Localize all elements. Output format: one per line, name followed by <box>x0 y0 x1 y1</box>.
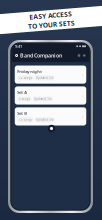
button[interactable]: Profile <box>15 54 18 57</box>
staticText: › <box>82 71 84 78</box>
staticText: EASY ACCESS <box>29 11 72 20</box>
staticText: Updated 2d <box>36 76 53 80</box>
staticText: Set B <box>17 110 27 116</box>
staticText: Updated 3w <box>36 118 53 121</box>
button[interactable]: Set B <box>15 107 86 125</box>
button[interactable]: Friday night <box>15 65 86 84</box>
button[interactable]: Settings <box>82 54 86 57</box>
staticText: 9 songs <box>19 97 30 101</box>
staticText: 14 songs <box>19 76 32 80</box>
button[interactable]: Set A <box>15 86 86 105</box>
staticText: › <box>82 113 84 120</box>
button[interactable]: Search <box>77 54 81 57</box>
staticText: Band Companion <box>20 52 62 59</box>
staticText: › <box>82 92 84 99</box>
staticText: Friday night <box>17 69 42 74</box>
staticText: TO YOUR SETS <box>27 20 74 29</box>
button[interactable]: Add set <box>48 125 55 132</box>
staticText: 9:41 <box>15 44 22 49</box>
staticText: 12 songs <box>19 118 32 121</box>
staticText: Set A <box>17 90 27 95</box>
staticText: Updated 1w <box>34 97 51 101</box>
